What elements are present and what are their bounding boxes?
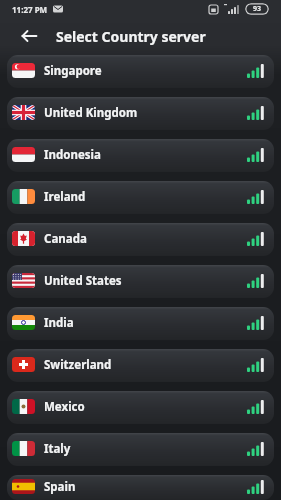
button[interactable]: Indonesia [7,139,274,172]
staticText: United Kingdom [44,105,138,121]
button[interactable]: Canada [7,223,274,256]
button[interactable]: Italy [7,433,274,466]
button[interactable]: Ireland [7,181,274,214]
staticText: 93 [253,4,262,14]
button[interactable]: United Kingdom [7,97,274,130]
button[interactable] [11,18,47,54]
staticText: United States [44,273,122,289]
button[interactable]: United States [7,265,274,298]
staticText: 11:27 PM [12,4,48,15]
staticText: Italy [44,441,71,457]
button[interactable]: India [7,307,274,340]
staticText: Singapore [44,63,102,79]
staticText: Select Country server [56,27,206,46]
button[interactable]: Singapore [7,55,274,88]
staticText: Ireland [44,189,86,205]
staticText: Indonesia [44,147,101,163]
button[interactable]: Mexico [7,391,274,424]
staticText: Canada [44,231,87,247]
staticText: Mexico [44,399,85,415]
staticText: India [44,315,74,331]
button[interactable]: Switzerland [7,349,274,382]
staticText: Switzerland [44,357,112,373]
staticText: Spain [44,479,76,495]
button[interactable]: Spain [7,475,274,500]
